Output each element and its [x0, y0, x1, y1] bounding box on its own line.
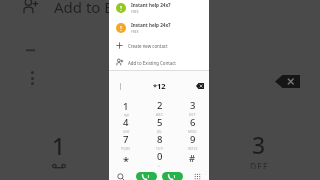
button[interactable]: Instant help 24x7	[109, 20, 209, 36]
staticText: JKL	[157, 129, 163, 133]
staticText: Instant help 24x7	[131, 22, 171, 28]
button[interactable]: 3	[176, 99, 209, 116]
staticText: 4	[123, 116, 129, 129]
staticText: FREE	[131, 9, 139, 14]
button[interactable]: Call with SIM 1	[136, 172, 157, 180]
button[interactable]: Instant help 24x7	[109, 0, 209, 16]
button[interactable]: 8	[143, 133, 176, 150]
staticText: 7	[123, 133, 129, 146]
staticText: PQRS	[121, 146, 131, 150]
button[interactable]: Search	[117, 173, 125, 180]
staticText: DEF	[189, 112, 196, 116]
staticText: +	[158, 163, 161, 167]
staticText: 1	[52, 130, 66, 161]
staticText: ABC	[156, 112, 163, 116]
button[interactable]: 2	[143, 99, 176, 116]
staticText: GHI	[123, 129, 130, 133]
staticText: 3	[190, 99, 196, 112]
staticText: 5	[157, 116, 163, 129]
button[interactable]: 6	[176, 116, 209, 133]
staticText: DEF	[250, 161, 269, 169]
button[interactable]: 1	[109, 99, 143, 116]
staticText: 0	[157, 150, 163, 163]
staticText: *	[123, 153, 130, 168]
button[interactable]: 0	[143, 150, 176, 167]
button[interactable]: Add contact	[22, 0, 38, 15]
button[interactable]: Call with SIM 2	[162, 172, 183, 180]
button[interactable]: 4	[109, 116, 143, 133]
staticText: Add to E	[54, 0, 113, 17]
staticText: TUV	[156, 146, 163, 150]
staticText: 3	[252, 129, 266, 160]
staticText: Instant help 24x7	[131, 2, 171, 8]
button[interactable]: Add to Existing Contact	[109, 55, 209, 70]
button[interactable]: 5	[143, 116, 176, 133]
button[interactable]: 7	[109, 133, 143, 150]
button[interactable]: One, voicemail	[44, 130, 74, 168]
staticText: 9	[190, 133, 196, 146]
staticText: FREE	[131, 29, 139, 34]
button[interactable]: Keypad	[194, 173, 201, 180]
button[interactable]: 9	[176, 133, 209, 150]
button[interactable]: #	[176, 150, 209, 167]
button[interactable]: Backspace	[275, 75, 300, 88]
staticText: *12	[153, 81, 166, 91]
staticText: Create new contact	[128, 43, 168, 49]
staticText: MNO	[188, 129, 197, 133]
staticText: 1	[123, 100, 129, 113]
staticText: Add to Existing Contact	[128, 60, 176, 66]
button[interactable]: Create new contact	[109, 38, 209, 53]
button[interactable]: Three D E F	[244, 129, 274, 169]
button[interactable]: More options	[30, 71, 35, 85]
button[interactable]: Backspace	[196, 83, 204, 89]
staticText: 8	[157, 133, 163, 146]
staticText: WXYZ	[188, 146, 198, 150]
button[interactable]: *	[109, 150, 143, 167]
staticText: 6	[190, 116, 196, 129]
staticText: 2	[157, 99, 163, 112]
staticText: #	[189, 152, 196, 165]
